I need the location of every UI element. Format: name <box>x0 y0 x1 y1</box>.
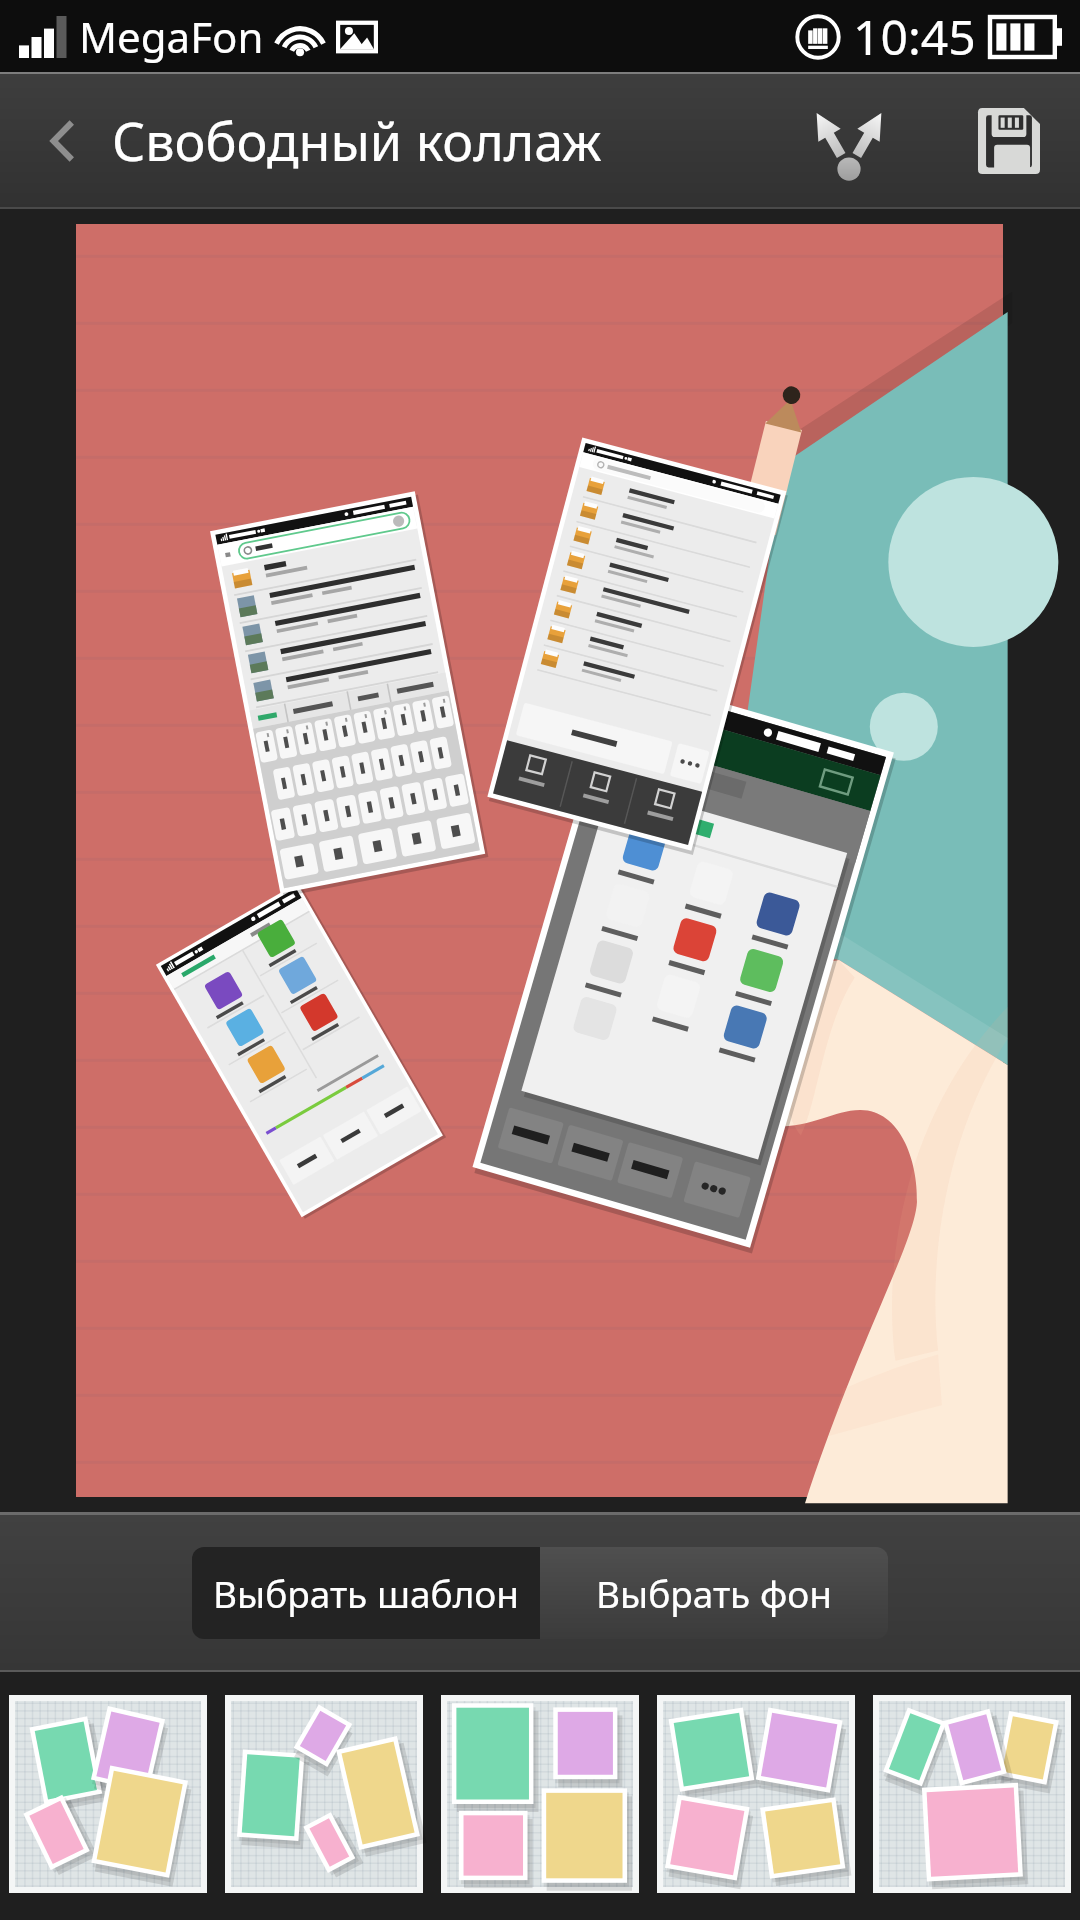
button[interactable]: Template 3 <box>441 1695 639 1893</box>
staticText: Выбрать фон <box>596 1568 832 1618</box>
staticText: 10:45 <box>853 4 976 69</box>
staticText: Свободный коллаж <box>112 105 602 176</box>
button[interactable]: Template 5 <box>873 1695 1071 1893</box>
button[interactable]: Template 4 <box>657 1695 855 1893</box>
button[interactable] <box>76 224 1003 1497</box>
button[interactable]: Выбрать шаблон <box>192 1547 540 1639</box>
button[interactable]: Save <box>938 72 1080 209</box>
staticText: MegaFon <box>79 8 264 65</box>
staticText: Выбрать шаблон <box>213 1568 520 1618</box>
button[interactable]: Template 1 <box>9 1695 207 1893</box>
other: Back <box>48 119 76 163</box>
button[interactable]: Template 2 <box>225 1695 423 1893</box>
button[interactable]: Share <box>759 72 938 209</box>
button[interactable]: Выбрать фон <box>540 1547 888 1639</box>
button[interactable]: Back <box>0 72 612 209</box>
